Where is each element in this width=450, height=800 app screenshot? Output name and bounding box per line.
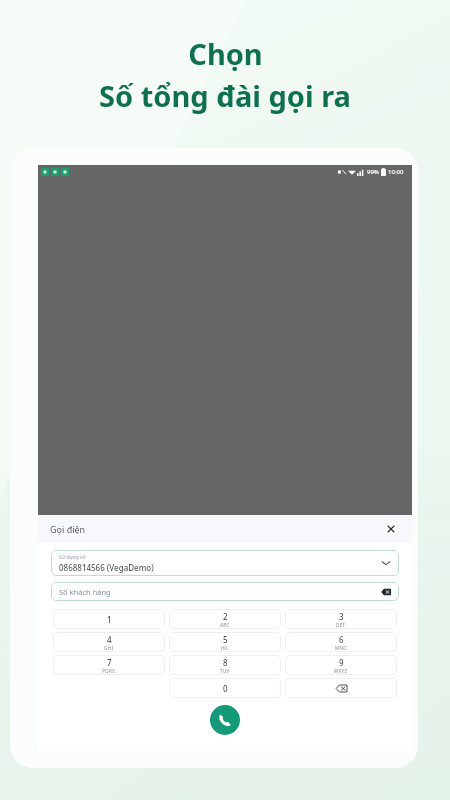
- staticText: JKL: [221, 645, 229, 651]
- staticText: GHI: [104, 645, 114, 651]
- staticText: Gọi điện: [50, 523, 86, 535]
- button[interactable]: 6: [285, 632, 397, 652]
- staticText: TUV: [220, 668, 230, 674]
- staticText: MNO: [335, 645, 348, 651]
- staticText: 6: [339, 634, 344, 645]
- staticText: 4: [107, 634, 112, 645]
- staticText: 7: [107, 657, 112, 668]
- staticText: 8: [223, 657, 228, 668]
- button[interactable]: Đóng: [384, 522, 398, 536]
- staticText: 2: [223, 611, 228, 622]
- button[interactable]: Sử dụng số: [51, 550, 399, 576]
- staticText: Chọn: [188, 34, 263, 73]
- staticText: WXYZ: [334, 668, 348, 674]
- button[interactable]: 9: [285, 655, 397, 675]
- button[interactable]: 1: [53, 609, 165, 629]
- staticText: 0: [223, 683, 228, 694]
- button[interactable]: 7: [53, 655, 165, 675]
- staticText: ABC: [220, 622, 230, 628]
- staticText: 10:00: [388, 168, 404, 176]
- staticText: 99%: [367, 168, 379, 176]
- button[interactable]: Xóa: [285, 678, 397, 698]
- button[interactable]: 2: [169, 609, 281, 629]
- staticText: 3: [339, 611, 344, 622]
- staticText: 9: [339, 657, 344, 668]
- button[interactable]: 4: [53, 632, 165, 652]
- staticText: Số khách hàng: [59, 587, 111, 597]
- button[interactable]: 0: [169, 678, 281, 698]
- staticText: 1: [107, 614, 112, 625]
- staticText: 0868814566 (VegaDemo): [59, 562, 154, 573]
- staticText: PQRS: [102, 668, 116, 674]
- staticText: Sử dụng số: [59, 554, 86, 561]
- staticText: Số tổng đài gọi ra: [99, 76, 351, 115]
- staticText: 5: [223, 634, 228, 645]
- staticText: DEF: [336, 622, 346, 628]
- button[interactable]: Số khách hàng: [51, 582, 399, 601]
- button[interactable]: 3: [285, 609, 397, 629]
- button[interactable]: Xóa: [381, 587, 391, 597]
- button[interactable]: 5: [169, 632, 281, 652]
- button[interactable]: 8: [169, 655, 281, 675]
- other: Xóa: [336, 683, 347, 694]
- button[interactable]: Gọi: [210, 705, 240, 735]
